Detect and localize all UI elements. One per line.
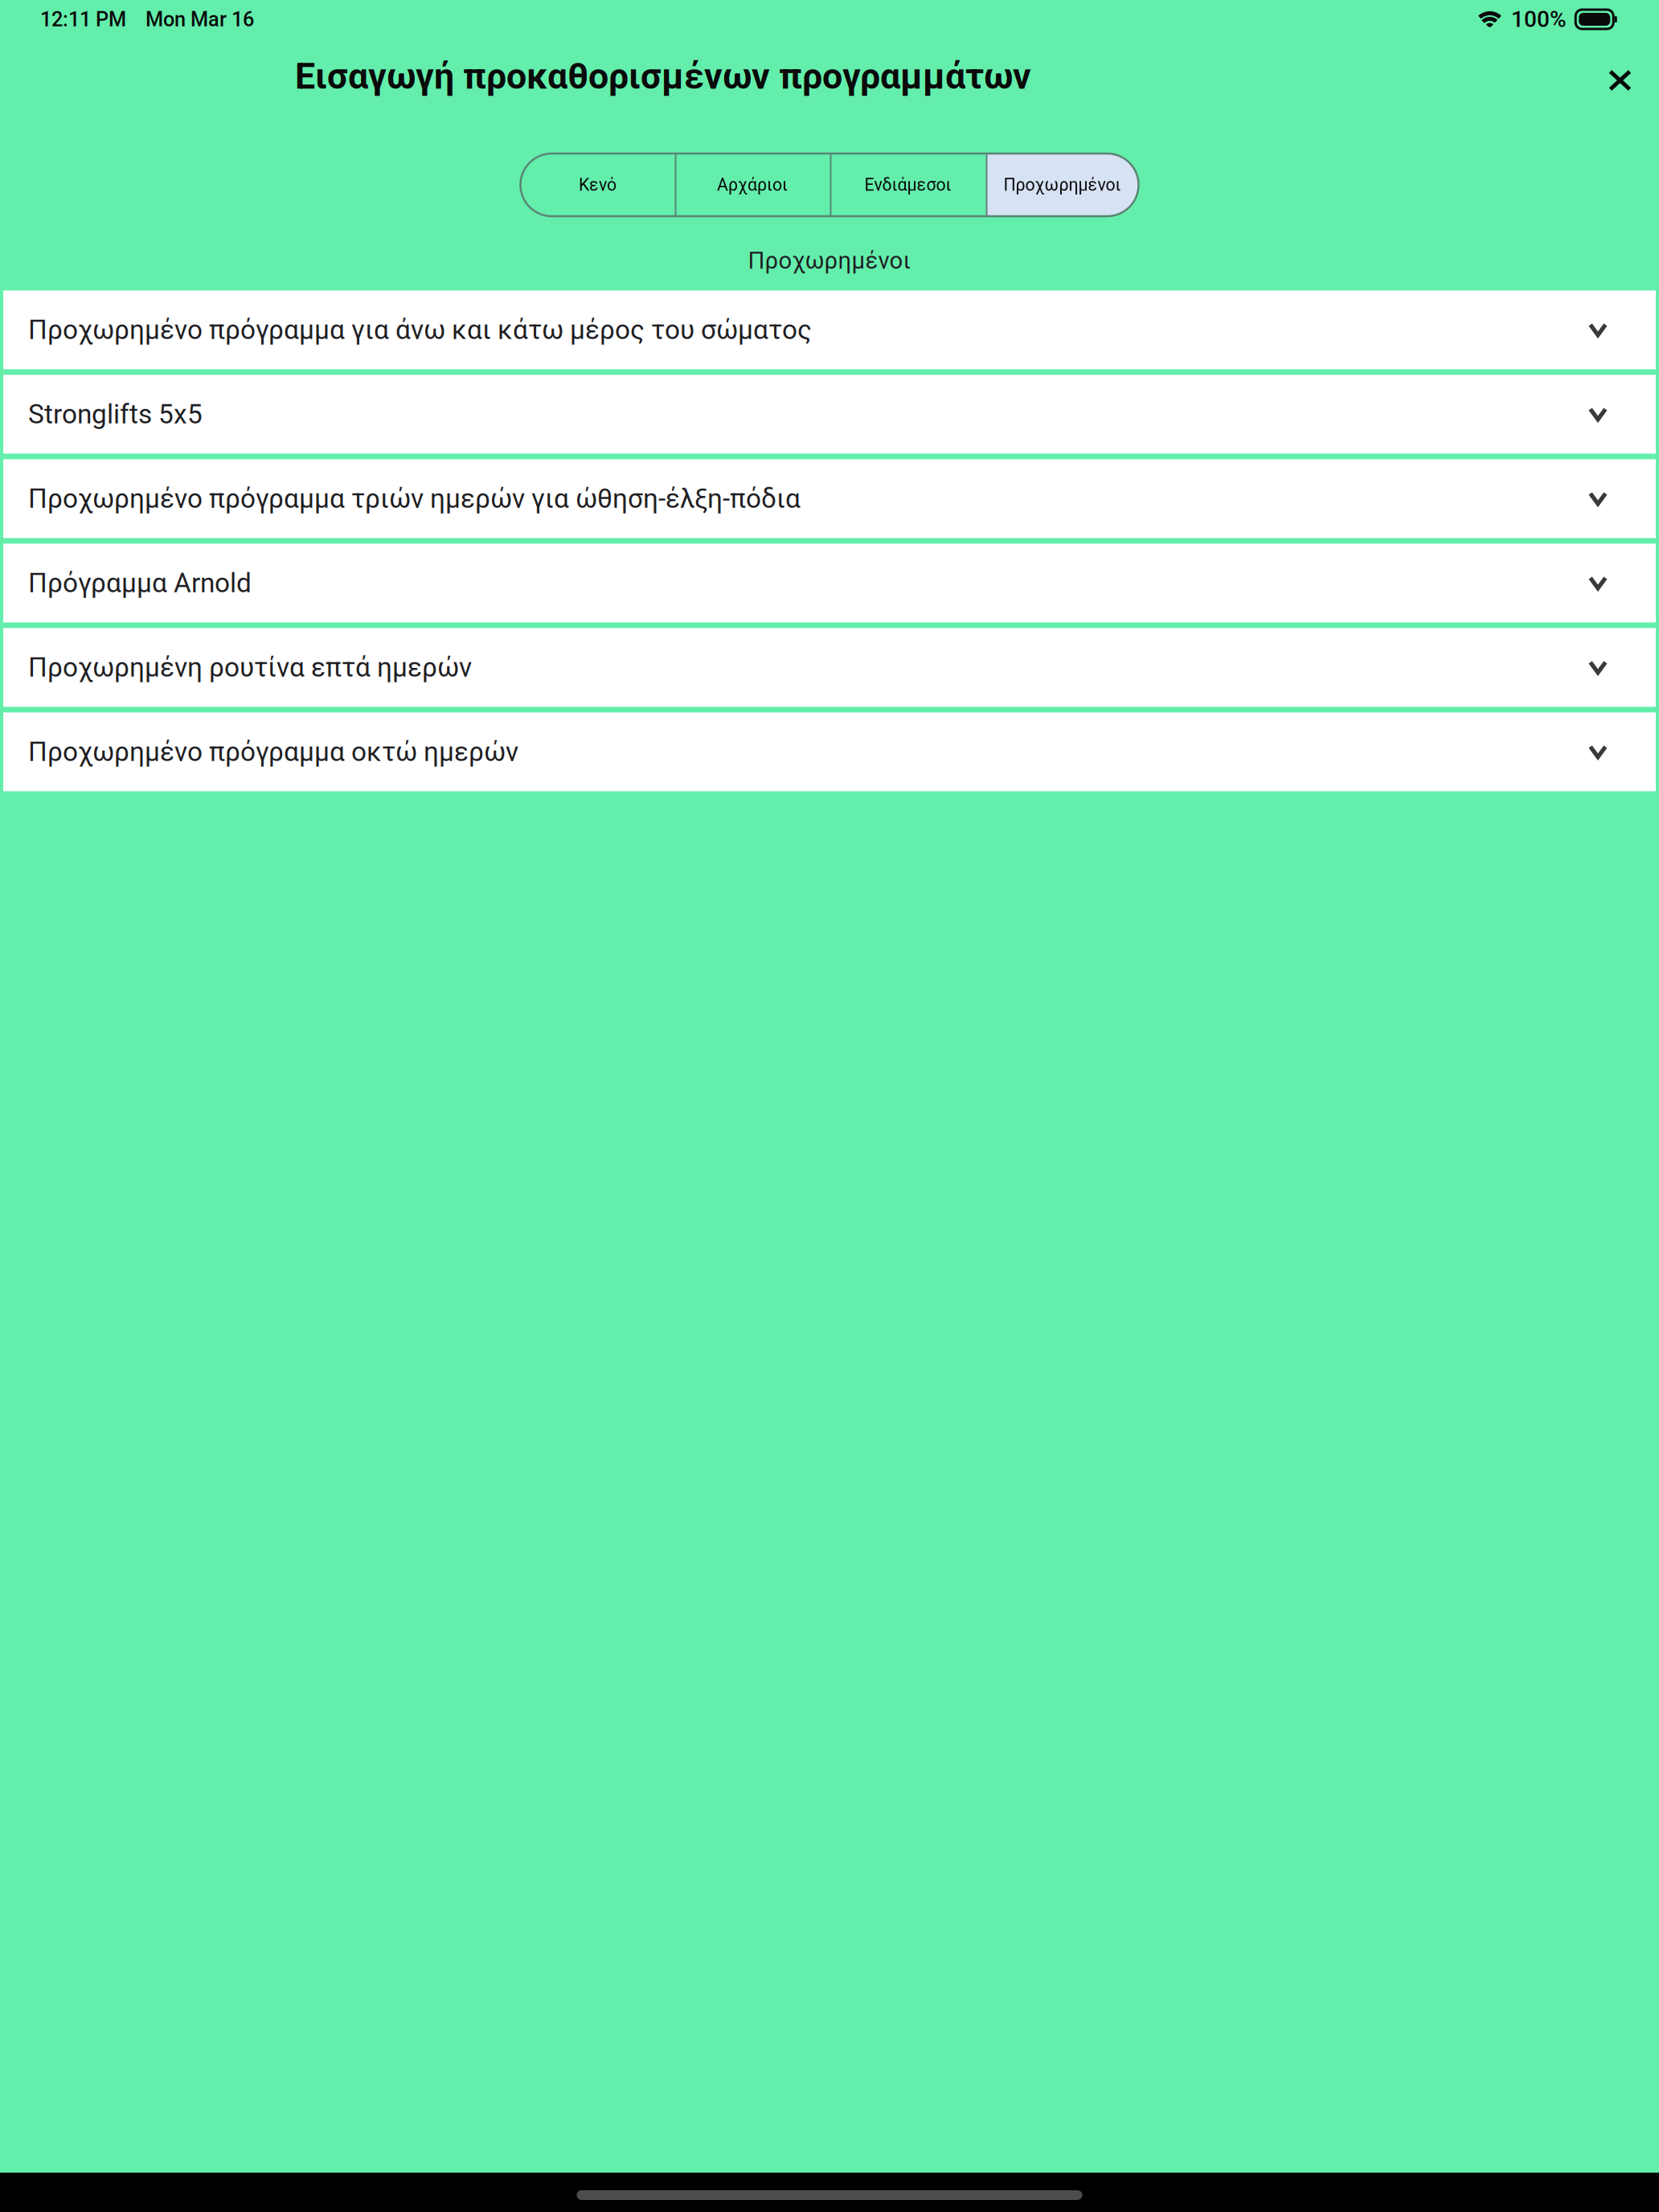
staticText: Προχωρημένοι bbox=[1004, 175, 1121, 195]
button[interactable]: Πρόγραμμα Arnold bbox=[3, 544, 1656, 622]
button[interactable]: Κενό bbox=[520, 154, 675, 216]
staticText: Προχωρημένοι bbox=[748, 247, 911, 274]
staticText: Πρόγραμμα Arnold bbox=[28, 567, 252, 599]
staticText: Stronglifts 5x5 bbox=[28, 399, 203, 430]
staticText: Προχωρημένο πρόγραμμα οκτώ ημερών bbox=[28, 736, 518, 768]
button[interactable]: Προχωρημένοι bbox=[986, 154, 1139, 216]
button[interactable]: Προχωρημένη ρουτίνα επτά ημερών bbox=[3, 628, 1656, 707]
staticText: Προχωρημένο πρόγραμμα για άνω και κάτω μ… bbox=[28, 314, 812, 346]
staticText: 12:11 PM bbox=[40, 7, 126, 31]
button[interactable]: Close bbox=[1593, 46, 1647, 107]
staticText: Κενό bbox=[579, 175, 616, 195]
button[interactable]: Προχωρημένο πρόγραμμα τριών ημερών για ώ… bbox=[3, 459, 1656, 538]
staticText: Προχωρημένο πρόγραμμα τριών ημερών για ώ… bbox=[28, 483, 801, 514]
button[interactable]: Stronglifts 5x5 bbox=[3, 375, 1656, 454]
button[interactable]: Προχωρημένο πρόγραμμα για άνω και κάτω μ… bbox=[3, 290, 1656, 369]
staticText: Αρχάριοι bbox=[717, 175, 788, 195]
staticText: Προχωρημένη ρουτίνα επτά ημερών bbox=[28, 652, 472, 683]
staticText: 100% bbox=[1511, 6, 1567, 32]
staticText: Ενδιάμεσοι bbox=[864, 175, 951, 195]
staticText: Εισαγωγή προκαθορισμένων προγραμμάτων bbox=[295, 55, 1031, 97]
button[interactable]: Προχωρημένο πρόγραμμα οκτώ ημερών bbox=[3, 712, 1656, 791]
button[interactable]: Αρχάριοι bbox=[675, 154, 830, 216]
staticText: Mon Mar 16 bbox=[145, 7, 254, 31]
button[interactable]: Ενδιάμεσοι bbox=[830, 154, 986, 216]
